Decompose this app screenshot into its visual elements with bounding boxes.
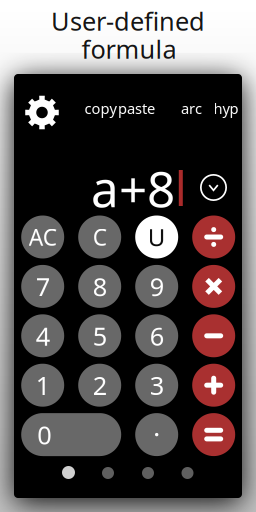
button[interactable]: Add	[192, 364, 235, 407]
staticText: U	[148, 221, 166, 253]
button[interactable]: 5	[78, 314, 121, 357]
button[interactable]: hyp	[213, 98, 239, 118]
staticText: 3	[150, 368, 164, 402]
staticText: 5	[93, 319, 107, 353]
staticText: arc	[181, 98, 202, 118]
staticText: AC	[29, 222, 57, 252]
button[interactable]: 8	[78, 265, 121, 308]
button[interactable]: AC	[21, 215, 64, 258]
button[interactable]: 7	[21, 265, 64, 308]
button[interactable]: Decimal point	[135, 413, 178, 456]
button[interactable]: 1	[21, 364, 64, 407]
button[interactable]: arc	[181, 98, 203, 118]
staticText: 9	[150, 270, 164, 303]
staticText: formula	[81, 32, 176, 66]
button[interactable]: Divide	[192, 215, 235, 258]
button[interactable]: Subtract	[192, 314, 235, 357]
button[interactable]: Equals	[192, 413, 235, 456]
staticText: 1	[36, 368, 50, 402]
staticText: 8	[93, 270, 107, 303]
staticText: paste	[118, 98, 155, 118]
button[interactable]: Settings	[25, 95, 59, 129]
staticText: 0	[37, 418, 51, 451]
button[interactable]: U	[135, 215, 178, 258]
button[interactable]: Recent entries	[200, 174, 227, 201]
button[interactable]: copy	[84, 98, 118, 118]
staticText: C	[93, 222, 107, 252]
button[interactable]: 9	[135, 265, 178, 308]
staticText: User-defined	[51, 4, 205, 38]
button[interactable]: 2	[78, 364, 121, 407]
staticText: copy	[84, 98, 116, 118]
staticText: hyp	[213, 98, 238, 118]
staticText: 4	[36, 319, 50, 353]
button[interactable]: 4	[21, 314, 64, 357]
button[interactable]: 6	[135, 314, 178, 357]
staticText: 2	[93, 368, 107, 402]
staticText: 6	[150, 319, 164, 353]
button[interactable]: paste	[118, 98, 158, 118]
staticText: 7	[36, 270, 50, 303]
button[interactable]: C	[78, 215, 121, 258]
button[interactable]: Multiply	[192, 265, 235, 308]
staticText: a+8	[91, 155, 175, 221]
button[interactable]: 3	[135, 364, 178, 407]
button[interactable]: 0	[21, 413, 121, 456]
